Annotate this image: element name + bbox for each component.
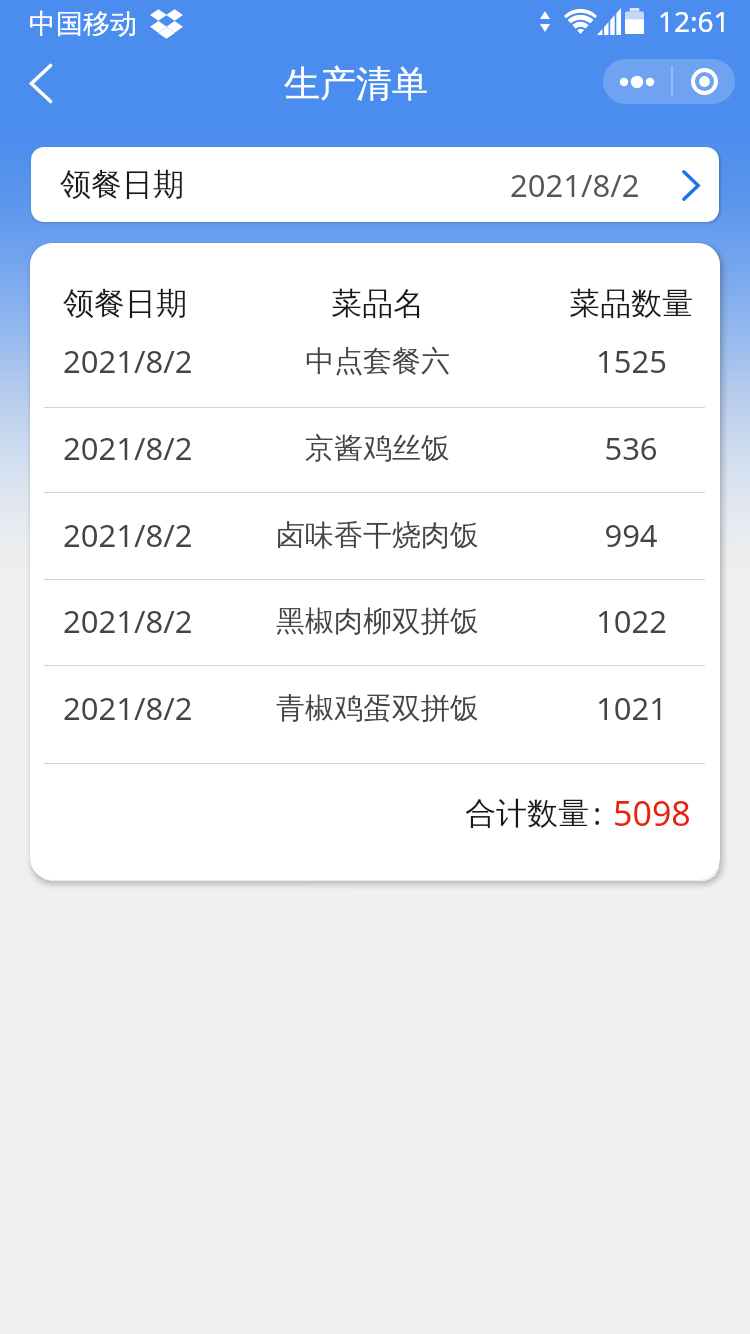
staticText: 生产清单 bbox=[284, 61, 428, 106]
staticText: 1022 bbox=[596, 600, 667, 642]
staticText: 卤味香干烧肉饭 bbox=[276, 517, 479, 554]
button[interactable]: Back bbox=[7, 52, 75, 114]
staticText: 领餐日期 bbox=[63, 284, 187, 323]
staticText: 536 bbox=[604, 427, 658, 469]
staticText: 合计数量 bbox=[465, 794, 589, 833]
staticText: 黑椒肉柳双拼饭 bbox=[276, 603, 479, 640]
staticText: 2021/8/2 bbox=[63, 687, 193, 729]
staticText: 青椒鸡蛋双拼饭 bbox=[276, 690, 479, 727]
staticText: 京酱鸡丝饭 bbox=[305, 430, 450, 467]
staticText: : bbox=[593, 792, 602, 834]
staticText: 2021/8/2 bbox=[63, 514, 193, 556]
button[interactable]: 2021/8/2 bbox=[30, 318, 720, 404]
staticText: 1021 bbox=[596, 687, 667, 729]
button[interactable]: 领餐日期 bbox=[31, 147, 719, 222]
button[interactable]: 2021/8/2 bbox=[30, 405, 720, 491]
staticText: 994 bbox=[604, 514, 658, 556]
staticText: 12:61 bbox=[658, 2, 730, 40]
button[interactable]: More options bbox=[603, 59, 671, 104]
button[interactable]: 2021/8/2 bbox=[30, 578, 720, 664]
staticText: 2021/8/2 bbox=[63, 340, 193, 382]
button[interactable]: 2021/8/2 bbox=[30, 492, 720, 578]
staticText: 5098 bbox=[613, 790, 691, 836]
staticText: 菜品数量 bbox=[569, 284, 693, 323]
staticText: 中国移动 bbox=[29, 7, 137, 41]
staticText: 2021/8/2 bbox=[63, 600, 193, 642]
staticText: 菜品名 bbox=[331, 284, 424, 323]
staticText: 中点套餐六 bbox=[305, 343, 450, 380]
staticText: 2021/8/2 bbox=[63, 427, 193, 469]
staticText: 2021/8/2 bbox=[510, 164, 640, 206]
button[interactable]: 2021/8/2 bbox=[30, 665, 720, 751]
staticText: 领餐日期 bbox=[60, 165, 184, 204]
staticText: 1525 bbox=[596, 340, 667, 382]
button[interactable]: Close mini program bbox=[673, 59, 735, 104]
